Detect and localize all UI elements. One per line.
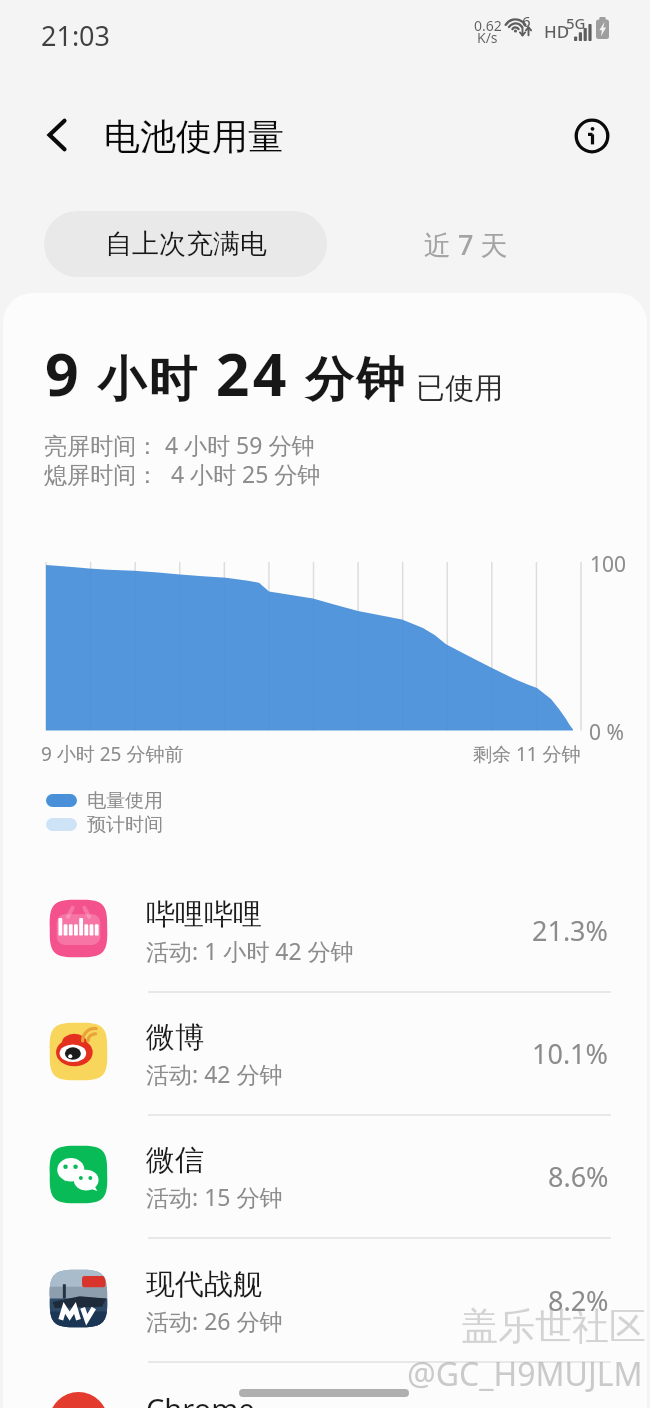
button[interactable]: 现代战舰 xyxy=(3,1238,647,1359)
staticText: 哔哩哔哩 xyxy=(146,896,262,933)
staticText: 微信 xyxy=(146,1142,204,1179)
staticText: 近 7 天 xyxy=(424,226,508,263)
button[interactable]: 哔哩哔哩 xyxy=(3,868,647,989)
staticText: 6 xyxy=(522,11,531,31)
staticText: 9 小时 25 分钟前 xyxy=(41,741,184,767)
staticText: 活动: 15 分钟 xyxy=(146,1181,283,1212)
staticText: 8.6% xyxy=(548,1158,609,1195)
staticText: 盖乐世社区 xyxy=(461,1303,646,1350)
button[interactable]: 自上次充满电 xyxy=(44,211,327,277)
button[interactable]: 近 7 天 xyxy=(352,211,580,277)
staticText: 自上次充满电 xyxy=(105,227,267,261)
staticText: HD xyxy=(544,20,570,43)
staticText: 电池使用量 xyxy=(104,114,284,159)
staticText: 10.1% xyxy=(532,1035,609,1072)
staticText: 剩余 11 分钟 xyxy=(473,741,581,767)
staticText: 21.3% xyxy=(532,912,609,949)
staticText: @GC_H9MUJLM xyxy=(407,1352,643,1396)
staticText: 现代战舰 xyxy=(146,1266,262,1303)
button[interactable]: 微信 xyxy=(3,1114,647,1235)
staticText: 21:03 xyxy=(41,17,111,54)
staticText: 亮屏时间： 4 小时 59 分钟 xyxy=(44,429,315,460)
button[interactable]: Chrome xyxy=(3,1361,647,1408)
staticText: 熄屏时间： 4 小时 25 分钟 xyxy=(44,458,321,489)
staticText: 已使用 xyxy=(416,370,503,407)
staticText: Chrome xyxy=(146,1389,255,1408)
button[interactable]: Information xyxy=(568,112,616,160)
staticText: 0.62 xyxy=(474,16,502,35)
staticText: 电量使用 xyxy=(87,789,163,813)
staticText: 活动: 26 分钟 xyxy=(146,1305,283,1336)
button[interactable]: Back xyxy=(32,110,82,160)
staticText: 0 % xyxy=(589,718,624,747)
staticText: 预计时间 xyxy=(87,813,163,837)
staticText: 微博 xyxy=(146,1019,204,1056)
staticText: 8.2% xyxy=(548,1282,609,1319)
staticText: 活动: 42 分钟 xyxy=(146,1058,283,1089)
button[interactable]: 微博 xyxy=(3,991,647,1112)
staticText: 活动: 1 小时 42 分钟 xyxy=(146,935,354,966)
staticText: 9 小时 24 分钟 xyxy=(45,333,408,413)
staticText: 100 xyxy=(590,550,627,579)
staticText: K/s xyxy=(477,28,498,47)
staticText: 5G xyxy=(566,13,586,33)
